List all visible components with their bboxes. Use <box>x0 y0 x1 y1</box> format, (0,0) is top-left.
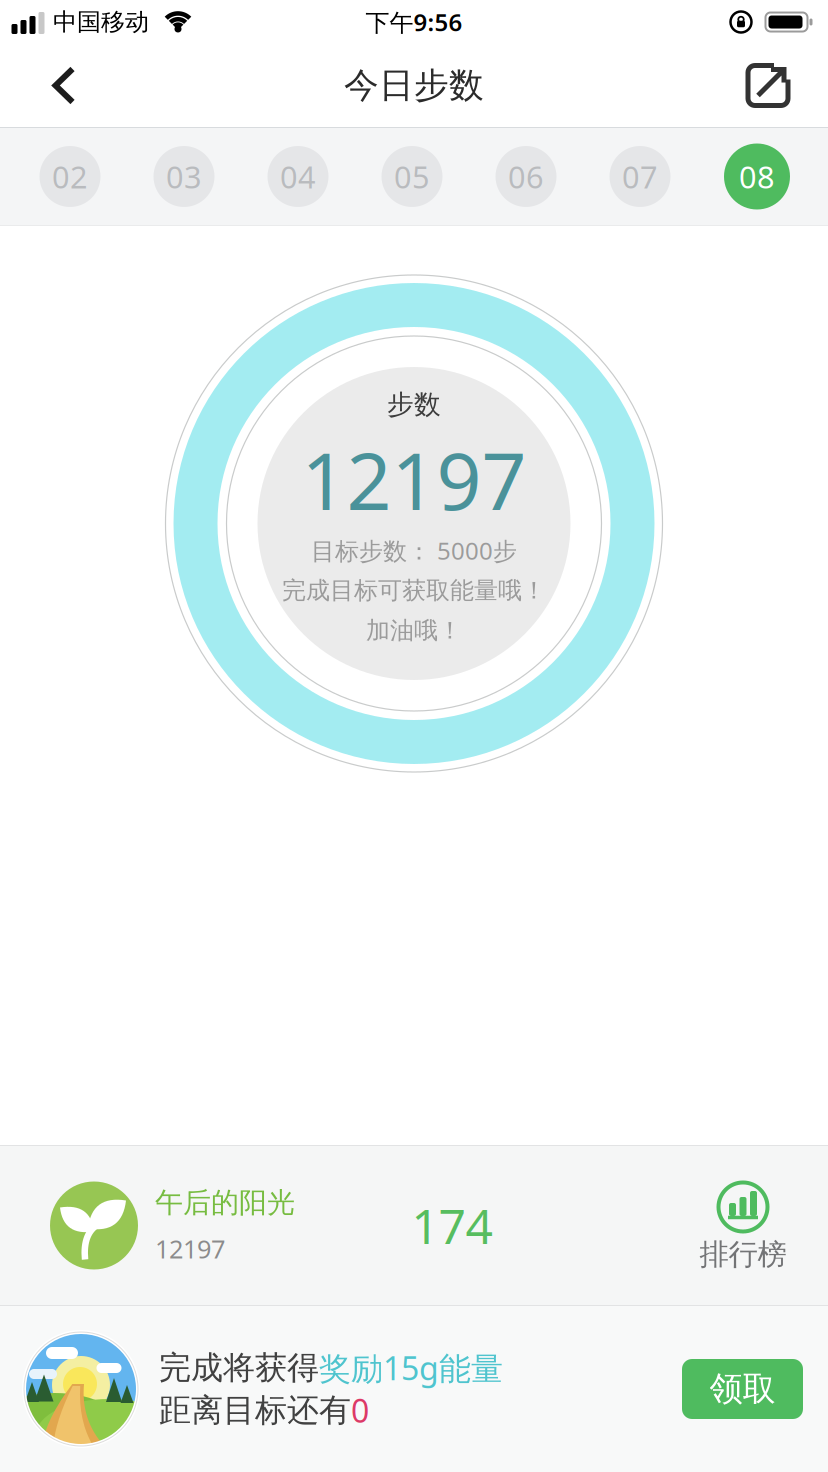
staticText: 完成将获得 <box>159 1348 319 1387</box>
staticText: 中国移动 <box>53 7 149 37</box>
staticText: 距离目标还有 <box>159 1391 351 1430</box>
button[interactable]: 02 <box>39 146 100 207</box>
staticText: 0 <box>351 1389 369 1431</box>
staticText: 今日步数 <box>344 64 484 107</box>
button[interactable]: 05 <box>381 146 442 207</box>
staticText: 07 <box>622 156 658 197</box>
staticText: 08 <box>739 156 775 197</box>
staticText: 步数 <box>387 388 441 421</box>
staticText: 完成目标可获取能量哦！ <box>282 576 546 605</box>
staticText: 05 <box>394 156 430 197</box>
staticText: 04 <box>280 156 316 197</box>
staticText: 06 <box>508 156 544 197</box>
staticText: 目标步数： 5000步 <box>311 535 517 566</box>
staticText: 12197 <box>301 427 526 532</box>
staticText: 174 <box>411 1194 492 1257</box>
staticText: 下午9:56 <box>365 6 462 38</box>
staticText: 03 <box>166 156 202 197</box>
button[interactable]: Share <box>734 51 802 119</box>
button[interactable]: Back <box>31 49 96 122</box>
staticText: 领取 <box>709 1368 775 1409</box>
staticText: 02 <box>52 156 88 197</box>
staticText: 加油哦！ <box>366 616 462 645</box>
button[interactable]: 07 <box>609 146 670 207</box>
button[interactable]: 03 <box>153 146 214 207</box>
button[interactable]: 06 <box>495 146 556 207</box>
button[interactable]: 排行榜 <box>699 1182 786 1272</box>
staticText: 排行榜 <box>699 1236 786 1272</box>
staticText: 午后的阳光 <box>155 1185 295 1220</box>
button[interactable]: 领取 <box>682 1359 803 1419</box>
button[interactable]: 04 <box>267 146 328 207</box>
staticText: 12197 <box>155 1232 225 1265</box>
button[interactable]: 08 <box>724 143 790 209</box>
staticText: 奖励15g能量 <box>319 1346 503 1389</box>
